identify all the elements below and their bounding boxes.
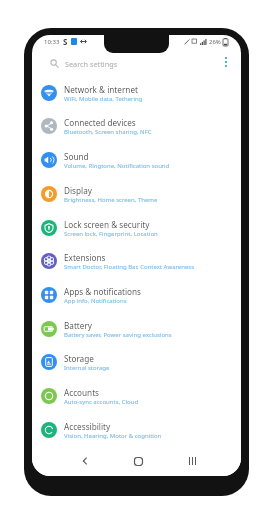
staticText: S xyxy=(63,36,68,47)
button[interactable]: Lock screen & security xyxy=(32,211,241,245)
button[interactable]: Sound xyxy=(32,143,241,177)
staticText: Accessibility xyxy=(64,421,111,432)
button[interactable]: Battery xyxy=(32,312,241,346)
staticText: Bluetooth, Screen sharing, NFC xyxy=(64,128,152,136)
staticText: Lock screen & security xyxy=(64,219,150,230)
staticText: Connected devices xyxy=(64,117,136,128)
staticText: Vision, Hearing, Motor & cognition xyxy=(64,432,162,440)
staticText: Internal storage xyxy=(64,364,110,372)
button[interactable]: More options xyxy=(220,54,232,70)
staticText: Storage xyxy=(64,353,94,364)
button[interactable]: Back xyxy=(75,451,95,471)
staticText: Network & internet xyxy=(64,84,138,95)
staticText: Auto-sync accounts, Cloud xyxy=(64,398,139,406)
button[interactable]: Accessibility xyxy=(32,413,241,447)
staticText: App info, Notifications xyxy=(64,297,127,305)
staticText: Brightness, Home screen, Theme xyxy=(64,196,158,204)
button[interactable]: Network & internet xyxy=(32,76,241,110)
button[interactable]: Home xyxy=(128,451,148,471)
staticText: Volume, Ringtone, Notification sound xyxy=(64,162,170,170)
staticText: Apps & notifications xyxy=(64,286,142,297)
staticText: Display xyxy=(64,185,92,196)
staticText: Screen lock, Fingerprint, Location xyxy=(64,230,158,238)
staticText: Accounts xyxy=(64,387,100,398)
button[interactable]: Recent apps xyxy=(182,451,202,471)
button[interactable]: Storage xyxy=(32,345,241,379)
staticText: WiFi, Mobile data, Tethering xyxy=(64,95,143,103)
staticText: Search settings xyxy=(65,59,118,69)
button[interactable]: Connected devices xyxy=(32,109,241,143)
staticText: Battery saver, Power saving exclusions xyxy=(64,331,172,339)
staticText: 10:33 xyxy=(44,38,60,46)
staticText: 26% xyxy=(209,38,221,46)
button[interactable]: Extensions xyxy=(32,244,241,278)
staticText: Extensions xyxy=(64,252,106,263)
staticText: Battery xyxy=(64,320,93,331)
button[interactable]: Apps & notifications xyxy=(32,278,241,312)
staticText: Sound xyxy=(64,151,89,162)
button[interactable]: Accounts xyxy=(32,379,241,413)
staticText: Smart Doctor, Floating Bar, Context Awar… xyxy=(64,263,195,271)
button[interactable]: Display xyxy=(32,177,241,211)
